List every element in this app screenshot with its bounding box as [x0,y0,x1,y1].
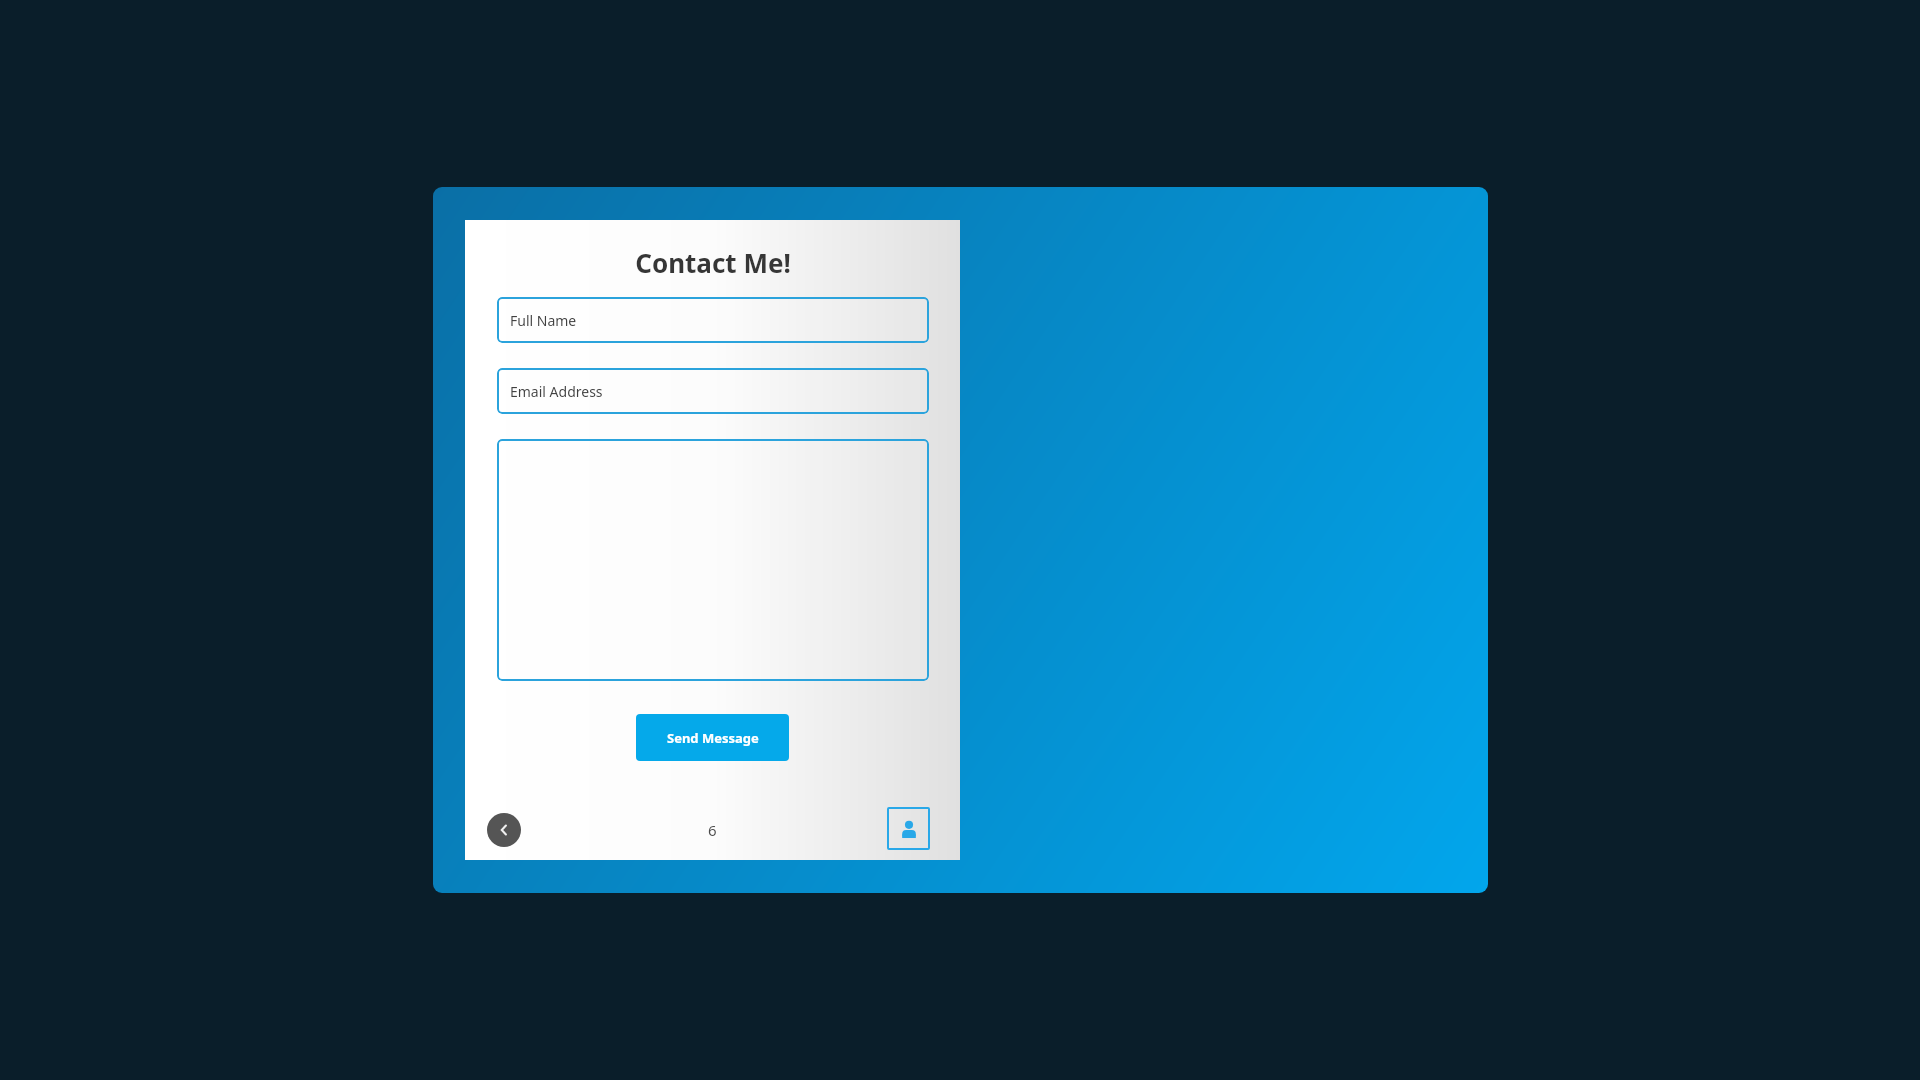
staticText: Full Name [510,311,577,330]
staticText: Send Message [667,729,759,747]
button[interactable]: Previous page [487,813,521,847]
button[interactable]: Email Address [497,368,929,414]
staticText: 6 [708,820,717,840]
staticText: Contact Me! [635,245,791,280]
button[interactable]: Contact [887,807,930,850]
staticText: Email Address [510,382,603,401]
button[interactable]: Send Message [636,714,789,761]
button[interactable]: Full Name [497,297,929,343]
button[interactable]: Message [497,439,929,681]
